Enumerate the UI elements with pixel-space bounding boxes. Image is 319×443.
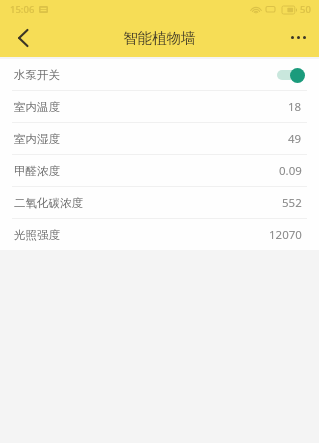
staticText: 552 <box>282 195 302 211</box>
staticText: 0.09 <box>279 163 302 179</box>
button[interactable]: 二氧化碳浓度 <box>0 187 319 218</box>
staticText: 甲醛浓度 <box>14 164 60 178</box>
staticText: 光照强度 <box>14 228 60 242</box>
button[interactable]: 室内温度 <box>0 91 319 122</box>
button[interactable]: Back <box>0 18 46 57</box>
staticText: 智能植物墙 <box>123 29 196 47</box>
button[interactable]: 甲醛浓度 <box>0 155 319 186</box>
button[interactable]: 室内湿度 <box>0 123 319 154</box>
staticText: 15:06 <box>10 3 35 16</box>
staticText: 18 <box>288 99 302 115</box>
button[interactable]: 光照强度 <box>0 219 319 250</box>
staticText: 12070 <box>269 227 302 243</box>
staticText: 二氧化碳浓度 <box>14 196 83 210</box>
button[interactable]: More options <box>277 18 319 57</box>
staticText: 室内温度 <box>14 100 60 114</box>
button[interactable]: Water pump switch, on <box>274 67 305 83</box>
button[interactable]: 水泵开关 <box>0 59 319 90</box>
staticText: 49 <box>288 131 302 147</box>
staticText: 水泵开关 <box>14 68 60 82</box>
staticText: 室内湿度 <box>14 132 60 146</box>
staticText: 50 <box>300 3 311 16</box>
